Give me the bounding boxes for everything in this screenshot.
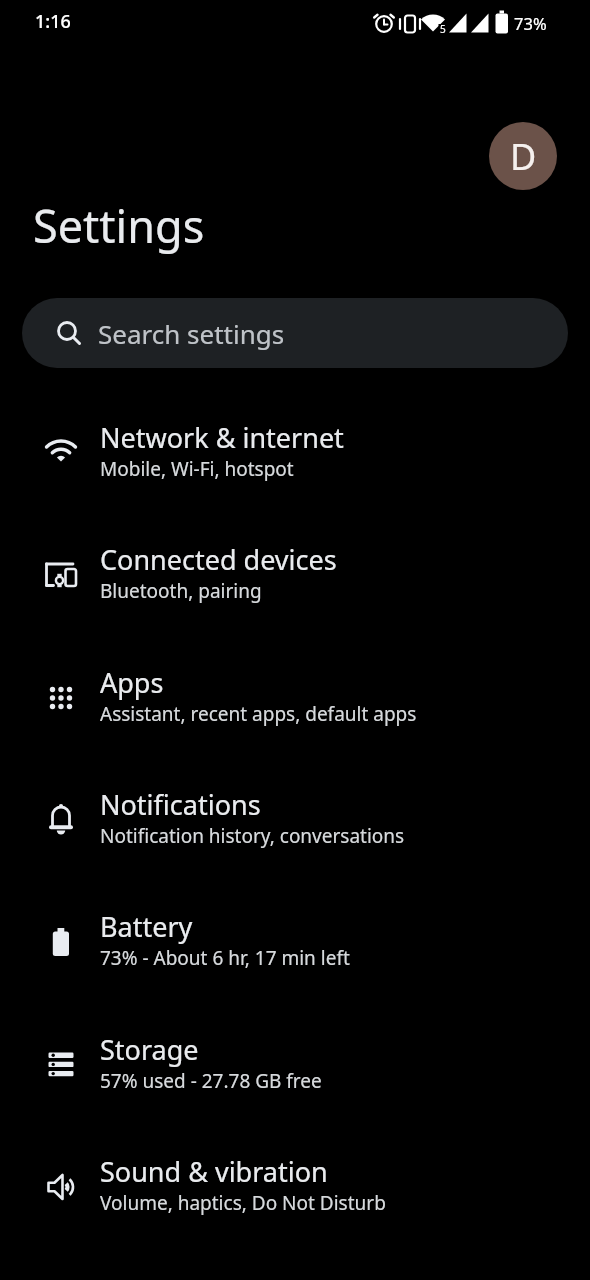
staticText: 57% used - 27.78 GB free (100, 1068, 322, 1094)
button[interactable]: Search settings (22, 298, 568, 368)
staticText: 1:16 (35, 9, 71, 34)
button[interactable]: Sound & vibration (0, 1126, 590, 1248)
staticText: 5 (440, 22, 446, 36)
staticText: Assistant, recent apps, default apps (100, 701, 417, 727)
staticText: D (510, 132, 537, 181)
staticText: Notification history, conversations (100, 823, 405, 849)
button[interactable]: Notifications (0, 759, 590, 881)
button[interactable]: D (489, 122, 557, 190)
button[interactable]: Network & internet (0, 392, 590, 514)
staticText: Network & internet (100, 419, 344, 456)
button[interactable]: Apps (0, 637, 590, 759)
staticText: Bluetooth, pairing (100, 578, 262, 604)
staticText: Search settings (98, 316, 285, 351)
button[interactable]: Storage (0, 1004, 590, 1126)
staticText: Battery (100, 908, 193, 945)
button[interactable]: Connected devices (0, 514, 590, 636)
staticText: Volume, haptics, Do Not Disturb (100, 1190, 386, 1216)
staticText: Notifications (100, 786, 261, 823)
staticText: Connected devices (100, 541, 337, 578)
staticText: Sound & vibration (100, 1153, 328, 1190)
staticText: Apps (100, 664, 164, 701)
staticText: Mobile, Wi-Fi, hotspot (100, 456, 294, 482)
staticText: Settings (33, 195, 205, 256)
staticText: Storage (100, 1031, 199, 1068)
staticText: 73% (514, 12, 547, 34)
button[interactable]: Battery (0, 881, 590, 1003)
staticText: 73% - About 6 hr, 17 min left (100, 945, 350, 971)
